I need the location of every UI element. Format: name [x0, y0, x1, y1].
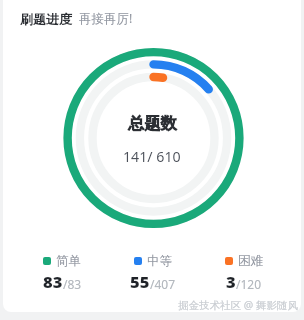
staticText: 141/ 610: [123, 147, 181, 166]
button[interactable]: 困难: [198, 253, 289, 292]
staticText: /407: [150, 276, 176, 292]
staticText: /83: [63, 276, 82, 292]
staticText: 55: [130, 270, 150, 292]
staticText: 简单: [56, 253, 81, 269]
staticText: /120: [236, 276, 262, 292]
staticText: 困难: [238, 253, 263, 269]
staticText: 83: [43, 270, 63, 292]
staticText: 3: [226, 270, 236, 292]
staticText: 刷题进度: [20, 11, 72, 27]
staticText: 再接再厉!: [79, 10, 133, 27]
staticText: 总题数: [128, 113, 177, 134]
staticText: 中等: [147, 253, 172, 269]
button[interactable]: 中等: [107, 253, 198, 292]
staticText: 掘金技术社区 @ 舞影随风: [178, 298, 298, 312]
button[interactable]: 简单: [17, 253, 107, 292]
